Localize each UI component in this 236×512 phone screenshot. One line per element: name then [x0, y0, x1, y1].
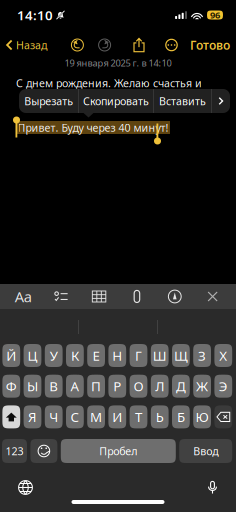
button[interactable]: Л — [151, 375, 169, 398]
button[interactable]: Скопировать — [79, 89, 153, 113]
button[interactable]: Checklist — [47, 284, 76, 309]
button[interactable]: More actions — [212, 89, 230, 113]
staticText: Г — [135, 347, 142, 364]
staticText: Вырезать — [24, 94, 73, 108]
button[interactable]: Т — [130, 405, 147, 428]
button[interactable]: Пробел — [61, 439, 176, 463]
button[interactable]: Вырезать — [19, 89, 78, 113]
staticText: Й — [6, 347, 16, 364]
button[interactable]: Щ — [172, 344, 190, 367]
staticText: Ы — [27, 377, 38, 395]
button[interactable]: Format — [9, 284, 38, 309]
staticText: Е — [93, 347, 100, 364]
staticText: Пробел — [99, 444, 137, 458]
button[interactable]: А — [66, 375, 84, 398]
button[interactable]: Я — [24, 405, 41, 428]
button[interactable]: Switch keyboard — [11, 473, 40, 502]
button[interactable]: Э — [214, 375, 232, 398]
staticText: Назад — [16, 38, 47, 52]
button[interactable]: Table — [85, 284, 114, 309]
staticText: 96 — [210, 9, 220, 21]
button[interactable]: Dictate — [200, 473, 225, 502]
staticText: П — [91, 377, 101, 395]
button[interactable]: И — [108, 405, 126, 428]
button[interactable]: К — [66, 344, 84, 367]
staticText: Ц — [27, 347, 37, 364]
button[interactable]: Redo — [94, 34, 115, 56]
staticText: Ввод — [193, 444, 218, 458]
staticText: С днем рождения. Желаю счастья и — [16, 76, 202, 90]
staticText: Скопировать — [83, 94, 149, 108]
staticText: М — [90, 408, 102, 426]
button[interactable]: Ввод — [179, 439, 232, 463]
button[interactable]: Х — [214, 344, 232, 367]
button[interactable]: У — [45, 344, 63, 367]
button[interactable]: Ы — [24, 375, 41, 398]
button[interactable]: Назад — [2, 33, 52, 57]
staticText: Э — [219, 377, 228, 395]
staticText: Ь — [156, 408, 164, 426]
button[interactable]: Shift — [2, 405, 20, 428]
staticText: Д — [176, 377, 186, 395]
staticText: Х — [219, 347, 227, 364]
button[interactable]: Ц — [24, 344, 41, 367]
staticText: Ч — [49, 408, 58, 426]
staticText: З — [198, 347, 206, 364]
staticText: Aa — [15, 287, 32, 306]
button[interactable]: Н — [108, 344, 126, 367]
staticText: Привет. Буду через 40 минут! — [17, 120, 168, 135]
button[interactable]: 123 — [2, 439, 27, 463]
button[interactable]: Вставить — [154, 89, 211, 113]
staticText: В — [49, 377, 58, 395]
button[interactable]: Ч — [45, 405, 63, 428]
button[interactable]: Г — [130, 344, 147, 367]
button[interactable]: С — [66, 405, 84, 428]
button[interactable]: Share — [130, 34, 148, 55]
button[interactable]: В — [45, 375, 63, 398]
button[interactable]: Markup — [160, 284, 189, 309]
staticText: Р — [113, 377, 121, 395]
staticText: Б — [177, 408, 185, 426]
button[interactable]: О — [130, 375, 147, 398]
button[interactable]: П — [87, 375, 105, 398]
staticText: Ж — [196, 377, 208, 395]
staticText: Н — [112, 347, 122, 364]
staticText: 19 января 2025 г. в 14:10 — [64, 57, 171, 69]
button[interactable]: Д — [172, 375, 190, 398]
button[interactable]: Р — [108, 375, 126, 398]
button[interactable]: З — [193, 344, 211, 367]
button[interactable]: М — [87, 405, 105, 428]
staticText: Ф — [6, 377, 17, 395]
staticText: И — [112, 408, 122, 426]
button[interactable]: Е — [87, 344, 105, 367]
button[interactable]: Ю — [193, 405, 211, 428]
button[interactable]: Ж — [193, 375, 211, 398]
staticText: Вставить — [159, 94, 206, 108]
button[interactable]: Ш — [151, 344, 169, 367]
button[interactable]: More — [162, 35, 181, 54]
staticText: Т — [135, 408, 142, 426]
staticText: С — [70, 408, 79, 426]
staticText: К — [71, 347, 79, 364]
staticText: 123 — [5, 444, 23, 458]
button[interactable]: Готово — [190, 32, 230, 58]
button[interactable]: Emoji — [30, 439, 57, 463]
staticText: О — [133, 377, 143, 395]
button[interactable]: Ф — [2, 375, 20, 398]
staticText: Ш — [153, 347, 167, 364]
staticText: Л — [155, 377, 164, 395]
button[interactable]: Close keyboard — [198, 284, 227, 309]
button[interactable]: Undo — [67, 34, 88, 56]
button[interactable]: Ь — [151, 405, 169, 428]
staticText: Готово — [190, 37, 230, 53]
button[interactable]: Attach — [122, 284, 151, 309]
staticText: А — [70, 377, 79, 395]
staticText: Я — [28, 408, 37, 426]
staticText: 14:10 — [17, 6, 53, 24]
staticText: Ю — [196, 408, 209, 426]
button[interactable]: Й — [2, 344, 20, 367]
button[interactable]: Delete — [214, 405, 232, 428]
button[interactable]: Б — [172, 405, 190, 428]
staticText: Щ — [174, 347, 188, 364]
staticText: У — [50, 347, 58, 364]
